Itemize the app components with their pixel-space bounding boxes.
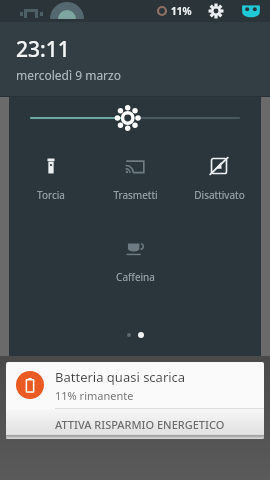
button[interactable]: ATTIVA RISPARMIO ENERGETICO [6, 409, 264, 439]
button[interactable]: Brightness [9, 97, 261, 139]
staticText: mercoledì 9 marzo [16, 67, 121, 83]
staticText: 11% [171, 4, 192, 18]
button[interactable]: Caffeina [93, 233, 177, 295]
staticText: Caffeina [116, 270, 155, 284]
staticText: Disattivato [194, 188, 245, 202]
button[interactable]: Trasmetti [93, 151, 177, 213]
button[interactable]: User profile [240, 0, 262, 22]
staticText: Torcia [37, 188, 65, 202]
button[interactable]: Batteria quasi scarica [6, 362, 264, 408]
button[interactable]: Disattivato [177, 151, 261, 213]
button[interactable]: Settings [206, 1, 226, 21]
staticText: ATTIVA RISPARMIO ENERGETICO [55, 417, 225, 432]
staticText: 23:11 [16, 35, 70, 64]
staticText: Batteria quasi scarica [55, 368, 186, 386]
button[interactable]: Torcia [9, 151, 93, 213]
staticText: Trasmetti [113, 188, 158, 202]
staticText: 11% rimanente [55, 388, 134, 403]
